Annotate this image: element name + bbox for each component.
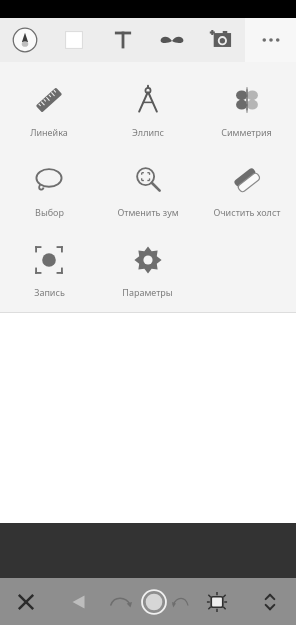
- staticText: Запись: [34, 286, 65, 298]
- button[interactable]: Brush size: [139, 587, 169, 617]
- button[interactable]: Redo: [169, 587, 190, 617]
- button[interactable]: Text: [98, 18, 147, 62]
- staticText: Эллипс: [132, 126, 164, 138]
- staticText: Параметры: [122, 286, 173, 298]
- staticText: Симметрия: [221, 126, 272, 138]
- button[interactable]: Запись: [0, 236, 98, 302]
- button[interactable]: Add photo: [196, 18, 245, 62]
- button[interactable]: Close: [0, 578, 52, 625]
- button[interactable]: Отменить зум: [98, 156, 197, 222]
- button[interactable]: Layers: [190, 578, 243, 625]
- staticText: Линейка: [30, 126, 68, 138]
- button[interactable]: Color: [49, 18, 98, 62]
- button[interactable]: Выбор: [0, 156, 98, 222]
- staticText: Отменить зум: [117, 206, 179, 218]
- button[interactable]: Smudge: [147, 18, 196, 62]
- button[interactable]: Линейка: [0, 76, 98, 142]
- staticText: Очистить холст: [213, 206, 281, 218]
- staticText: Выбор: [35, 206, 64, 218]
- button[interactable]: Параметры: [98, 236, 197, 302]
- button[interactable]: Brush: [0, 18, 49, 62]
- button[interactable]: Эллипс: [98, 76, 197, 142]
- button[interactable]: More options: [245, 18, 296, 62]
- button[interactable]: Undo: [105, 587, 139, 617]
- button[interactable]: Expand: [243, 578, 296, 625]
- button[interactable]: Очистить холст: [197, 156, 296, 222]
- button[interactable]: Back: [52, 578, 105, 625]
- button[interactable]: Симметрия: [197, 76, 296, 142]
